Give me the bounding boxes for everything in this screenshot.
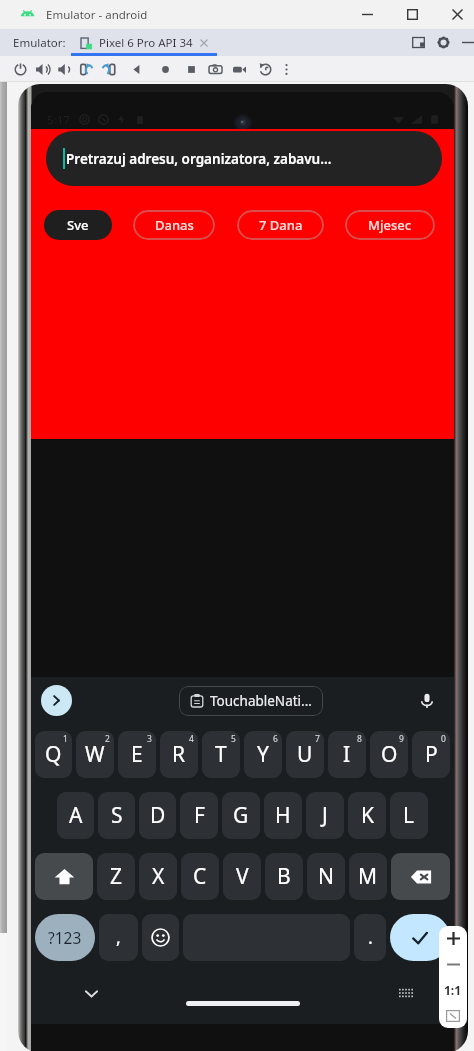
button[interactable]: D [139,792,176,839]
staticText: Z [110,862,123,891]
button[interactable]: P [412,731,450,778]
staticText: 7 [315,733,320,745]
staticText: J [322,801,328,830]
button[interactable]: volup [31,56,53,82]
button[interactable]: Comma [99,914,138,961]
button[interactable]: U [286,731,324,778]
staticText: Q [45,740,62,769]
button[interactable]: Shift [35,853,93,900]
button[interactable]: power [9,56,31,82]
button[interactable]: Danas [133,210,215,240]
button[interactable]: Split panel [407,29,429,56]
staticText: 9 [399,733,404,745]
button[interactable]: Enter [390,914,450,961]
button[interactable]: screenshot [204,56,226,82]
staticText: P [425,740,438,769]
button[interactable]: B [265,853,303,900]
button[interactable]: Emoji [142,914,179,961]
button[interactable]: More suggestions [41,685,72,716]
button[interactable]: history [254,56,276,82]
button[interactable]: record [228,56,250,82]
staticText: B [277,862,291,891]
staticText: 3 [147,733,152,745]
button[interactable]: Pixel 6 Pro API 34 [71,29,217,56]
button[interactable]: Fit to screen [439,1003,467,1028]
button[interactable]: voldn [52,56,74,82]
staticText: Pixel 6 Pro API 34 [99,35,193,51]
button[interactable]: Backspace [391,853,450,900]
button[interactable]: Settings [432,29,454,56]
staticText: E [131,740,143,769]
button[interactable]: R [160,731,198,778]
staticText: V [236,862,249,891]
staticText: X [152,862,165,891]
button[interactable]: Minimize [351,0,383,29]
button[interactable]: W [76,731,114,778]
button[interactable]: H [264,792,302,839]
button[interactable]: G [222,792,260,839]
staticText: . [368,925,373,950]
button[interactable]: rotr [75,56,97,82]
staticText: 5:17 [47,112,70,128]
button[interactable]: I [328,731,366,778]
button[interactable]: Zoom out [439,952,467,977]
button[interactable]: E [118,731,156,778]
button[interactable]: S [98,792,135,839]
button[interactable]: more [275,56,297,82]
staticText: 4 [189,733,194,745]
button[interactable]: ?123 [35,914,95,961]
button[interactable]: TouchableNati... [179,686,323,716]
staticText: M [358,862,378,891]
button[interactable]: Z [97,853,135,900]
staticText: 1 [63,733,68,745]
button[interactable]: Hide keyboard [78,980,104,1006]
button[interactable]: X [139,853,177,900]
button[interactable]: Switch keyboard [394,981,418,1005]
staticText: L [403,801,415,830]
button[interactable]: J [306,792,344,839]
button[interactable]: Collapse [457,29,474,56]
staticText: A [69,801,83,830]
button[interactable]: Q [35,731,72,778]
button[interactable]: V [223,853,261,900]
staticText: S [111,801,123,830]
button[interactable]: C [181,853,219,900]
staticText: I [343,740,351,769]
button[interactable]: rotl [97,56,119,82]
button[interactable]: Maximize [396,0,428,29]
button[interactable]: 1:1 [439,977,467,1002]
button[interactable]: O [370,731,408,778]
button[interactable]: A [57,792,94,839]
button[interactable]: Close [441,0,473,29]
staticText: ?123 [48,927,82,948]
staticText: G [233,801,249,830]
button[interactable]: Sve [44,210,112,240]
button[interactable]: M [349,853,387,900]
button[interactable]: Period [354,914,386,961]
button[interactable]: Y [244,731,282,778]
staticText: O [381,740,398,769]
button[interactable]: Voice input [414,688,440,714]
staticText: R [172,740,186,769]
staticText: Danas [155,216,194,234]
button[interactable]: Pretrazuj adresu, organizatora, zabavu..… [46,131,442,186]
button[interactable]: 7 Dana [237,210,324,240]
button[interactable]: T [202,731,240,778]
button[interactable]: K [348,792,386,839]
button[interactable]: Zoom in [439,926,467,951]
staticText: 7 Dana [259,216,303,234]
button[interactable]: Mjesec [345,210,435,240]
staticText: Mjesec [368,216,412,234]
button[interactable]: L [390,792,428,839]
staticText: C [193,862,207,891]
staticText: 1:1 [444,982,462,998]
button[interactable]: recent [180,56,202,82]
staticText: Sve [67,216,89,234]
staticText: F [194,801,205,830]
button[interactable]: back [125,56,147,82]
staticText: Pretrazuj adresu, organizatora, zabavu..… [66,150,332,168]
button[interactable]: home [154,56,176,82]
button[interactable]: N [307,853,345,900]
button[interactable]: F [180,792,218,839]
